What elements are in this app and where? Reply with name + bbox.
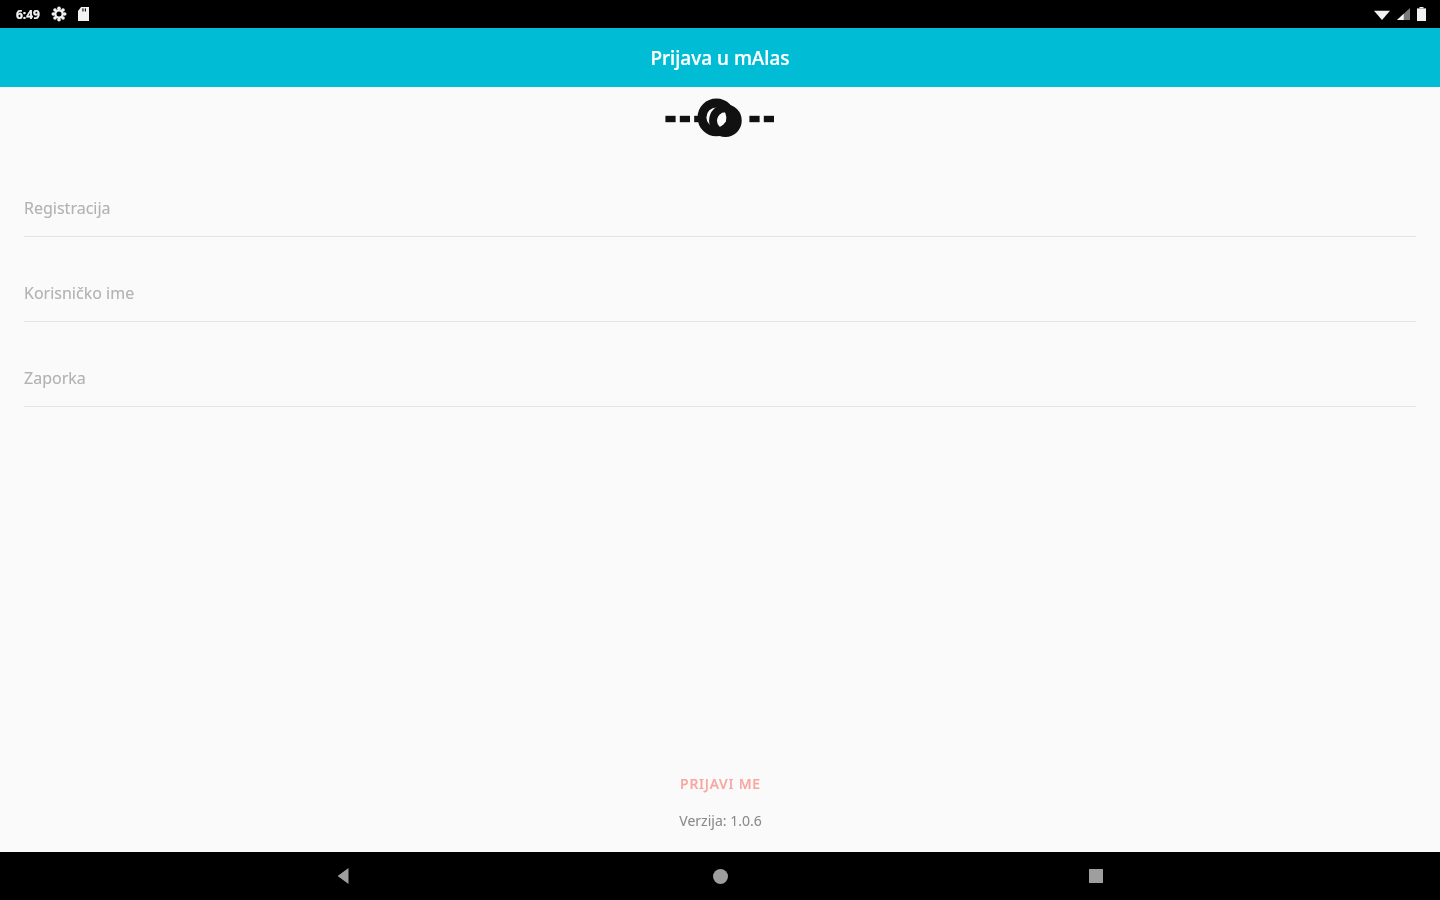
staticText: Korisničko ime	[24, 282, 135, 304]
staticText: Zaporka	[24, 367, 86, 389]
staticText: Verzija: 1.0.6	[679, 811, 762, 830]
button[interactable]: PRIJAVI ME	[660, 766, 781, 801]
button[interactable]: Zaporka	[0, 367, 1440, 407]
staticText: Registracija	[24, 197, 111, 219]
button[interactable]: Korisničko ime	[0, 282, 1440, 322]
staticText: PRIJAVI ME	[680, 774, 761, 793]
button[interactable]: Registracija	[0, 197, 1440, 237]
staticText: 6:49	[16, 6, 40, 22]
button[interactable]: Home	[688, 852, 752, 900]
button[interactable]: Back	[312, 852, 376, 900]
button[interactable]: Recent apps	[1064, 852, 1128, 900]
staticText: Prijava u mAlas	[650, 45, 790, 71]
